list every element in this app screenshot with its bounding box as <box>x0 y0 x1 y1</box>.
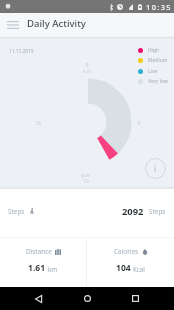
staticText: 1.61 <box>28 262 46 274</box>
button[interactable]: Calories <box>87 238 174 287</box>
button[interactable]: Recents <box>123 287 147 310</box>
staticText: p.m <box>74 172 98 179</box>
staticText: 18 <box>26 120 50 127</box>
staticText: Very low <box>148 78 168 85</box>
staticText: Steps <box>149 207 166 216</box>
button[interactable]: Distance <box>0 238 86 287</box>
button[interactable]: Very low <box>138 76 168 86</box>
button[interactable]: Low <box>138 66 158 76</box>
staticText: 11.11.2015 <box>9 48 34 55</box>
button[interactable]: Medium <box>138 55 168 65</box>
button[interactable]: Steps <box>0 189 174 237</box>
staticText: a.m <box>75 68 99 75</box>
staticText: 2092 <box>122 205 144 218</box>
button[interactable]: Home <box>75 287 99 310</box>
staticText: 104 <box>116 262 131 274</box>
staticText: 6 <box>127 120 151 127</box>
staticText: Low <box>148 68 158 75</box>
button[interactable]: High <box>138 45 160 55</box>
staticText: Steps <box>8 207 25 216</box>
staticText: High <box>148 47 160 54</box>
staticText: i <box>154 163 157 174</box>
staticText: Calories <box>114 247 139 256</box>
staticText: 0 <box>75 62 99 69</box>
staticText: km <box>48 265 58 273</box>
staticText: 10:35 <box>146 2 172 12</box>
staticText: 12 <box>74 178 98 185</box>
staticText: Distance <box>26 247 52 256</box>
button[interactable]: Info <box>145 158 166 179</box>
staticText: Daily Activity <box>27 17 86 30</box>
button[interactable]: Menu <box>1 13 25 37</box>
staticText: Kcal <box>133 265 145 273</box>
button[interactable]: Back <box>26 287 50 310</box>
staticText: Medium <box>148 57 168 64</box>
